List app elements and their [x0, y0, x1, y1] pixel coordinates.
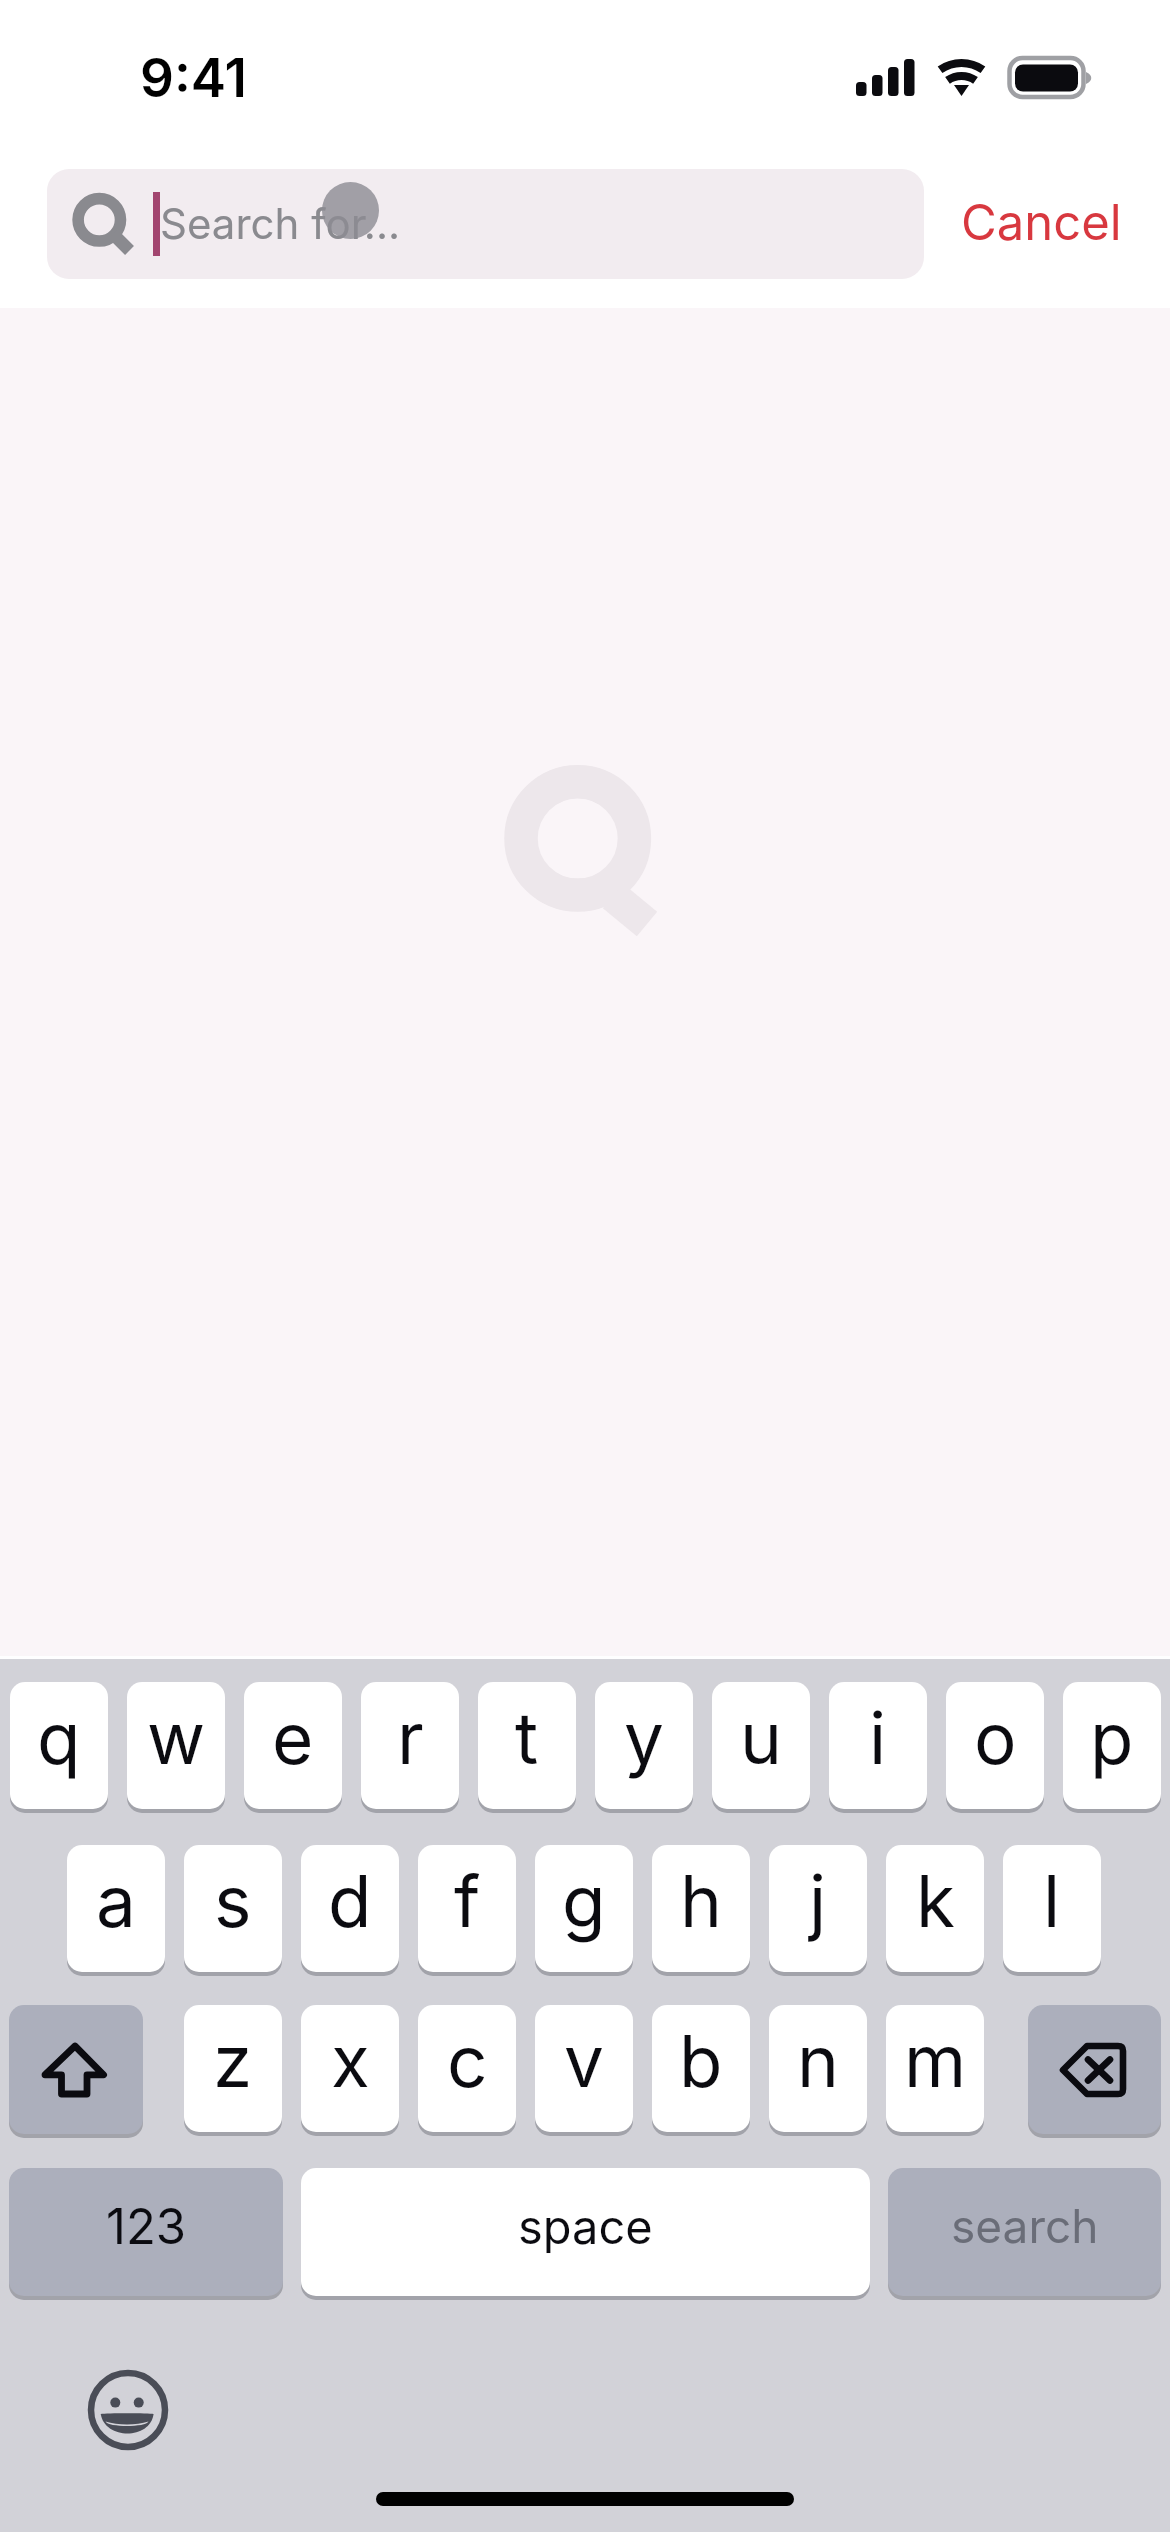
staticText: s [214, 1858, 252, 1944]
staticText: p [1090, 1695, 1134, 1781]
staticText: w [147, 1695, 206, 1781]
button[interactable]: r [361, 1682, 459, 1809]
button[interactable]: o [946, 1682, 1044, 1809]
staticText: g [562, 1858, 606, 1944]
staticText: h [680, 1858, 722, 1944]
staticText: n [797, 2018, 839, 2104]
button[interactable]: y [595, 1682, 693, 1809]
button[interactable]: 123 [9, 2168, 283, 2296]
button[interactable]: c [418, 2005, 516, 2132]
button[interactable]: p [1063, 1682, 1161, 1809]
staticText: o [974, 1695, 1017, 1781]
button[interactable]: h [652, 1845, 750, 1972]
button[interactable]: k [886, 1845, 984, 1972]
staticText: m [904, 2018, 967, 2104]
button[interactable]: j [769, 1845, 867, 1972]
button[interactable]: Cancel [940, 169, 1142, 279]
button[interactable]: l [1003, 1845, 1101, 1972]
other: Backspace [1028, 2005, 1161, 2134]
button[interactable]: d [301, 1845, 399, 1972]
other: Shift [9, 2005, 143, 2134]
button[interactable]: g [535, 1845, 633, 1972]
staticText: space [518, 2198, 653, 2255]
staticText: j [809, 1858, 827, 1944]
staticText: a [96, 1858, 136, 1944]
button[interactable]: n [769, 2005, 867, 2132]
button[interactable]: e [244, 1682, 342, 1809]
staticText: b [679, 2018, 723, 2104]
button[interactable]: Shift [9, 2005, 143, 2134]
staticText: v [564, 2018, 604, 2104]
button[interactable]: v [535, 2005, 633, 2132]
staticText: Search for... [160, 198, 401, 249]
staticText: Cancel [961, 193, 1122, 252]
staticText: t [515, 1695, 539, 1781]
staticText: 123 [106, 2197, 187, 2256]
staticText: q [37, 1695, 81, 1781]
button[interactable]: w [127, 1682, 225, 1809]
button[interactable]: search [888, 2168, 1161, 2296]
button[interactable]: Backspace [1028, 2005, 1161, 2134]
button[interactable]: m [886, 2005, 984, 2132]
button[interactable]: space [301, 2168, 870, 2296]
button[interactable]: i [829, 1682, 927, 1809]
button[interactable]: f [418, 1845, 516, 1972]
staticText: f [454, 1858, 481, 1944]
staticText: c [447, 2018, 488, 2104]
staticText: k [916, 1858, 955, 1944]
button[interactable]: t [478, 1682, 576, 1809]
staticText: x [331, 2018, 370, 2104]
button[interactable]: Search for... [47, 169, 924, 279]
button[interactable]: x [301, 2005, 399, 2132]
staticText: e [272, 1695, 314, 1781]
staticText: l [1043, 1858, 1061, 1944]
button[interactable]: q [10, 1682, 108, 1809]
staticText: d [328, 1858, 372, 1944]
button[interactable]: a [67, 1845, 165, 1972]
staticText: z [213, 2018, 253, 2104]
staticText: search [951, 2198, 1099, 2254]
button[interactable]: s [184, 1845, 282, 1972]
button[interactable]: b [652, 2005, 750, 2132]
staticText: y [624, 1695, 664, 1781]
staticText: i [869, 1695, 887, 1781]
button[interactable]: z [184, 2005, 282, 2132]
staticText: u [740, 1695, 782, 1781]
staticText: r [397, 1695, 424, 1781]
button[interactable]: Emoji keyboard [82, 2364, 178, 2460]
button[interactable]: u [712, 1682, 810, 1809]
staticText: 9:41 [140, 46, 247, 110]
